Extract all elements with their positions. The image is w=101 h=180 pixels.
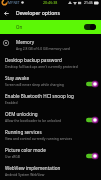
staticText: OEM unlocking xyxy=(5,111,38,117)
staticText: Memory xyxy=(16,39,35,45)
staticText: WebView implementation xyxy=(5,165,61,171)
staticText: 20:46:38 xyxy=(43,0,58,5)
button[interactable]: Stay awake xyxy=(0,70,101,88)
staticText: Enabled xyxy=(5,100,18,104)
button[interactable]: Enable Bluetooth HCI snoop log xyxy=(0,88,101,106)
button[interactable]: Running services xyxy=(0,124,101,142)
staticText: On xyxy=(16,24,23,30)
button[interactable]: OEM unlocking xyxy=(0,106,101,124)
staticText: Running services xyxy=(5,129,42,135)
button[interactable]: Memory xyxy=(0,34,101,52)
staticText: Enable Bluetooth HCI snoop log xyxy=(5,93,74,99)
staticText: Desktop full backups aren't currently pr… xyxy=(5,64,78,68)
staticText: Android System WebView xyxy=(5,172,45,176)
staticText: Developer options xyxy=(16,10,60,17)
button[interactable]: Desktop backup password xyxy=(0,52,101,70)
staticText: View and control currently running servi… xyxy=(5,136,72,140)
staticText: Allow the bootloader to be unlocked xyxy=(5,118,62,122)
staticText: Picture color mode xyxy=(5,147,46,153)
staticText: Use sRGB xyxy=(5,154,20,158)
staticText: 21:46 xyxy=(84,0,93,5)
staticText: Desktop backup password xyxy=(5,57,62,63)
button[interactable]: WebView implementation xyxy=(0,160,101,178)
button[interactable]: Picture color mode xyxy=(0,142,101,160)
staticText: Avg 2.8 GB of 6.0 GB memory used xyxy=(16,46,70,50)
button[interactable]: On xyxy=(0,20,101,34)
button[interactable]: Back xyxy=(0,7,12,20)
staticText: MY NET xyxy=(8,1,20,5)
staticText: Stay awake xyxy=(5,75,30,81)
staticText: Screen will never sleep while charging xyxy=(5,82,64,86)
